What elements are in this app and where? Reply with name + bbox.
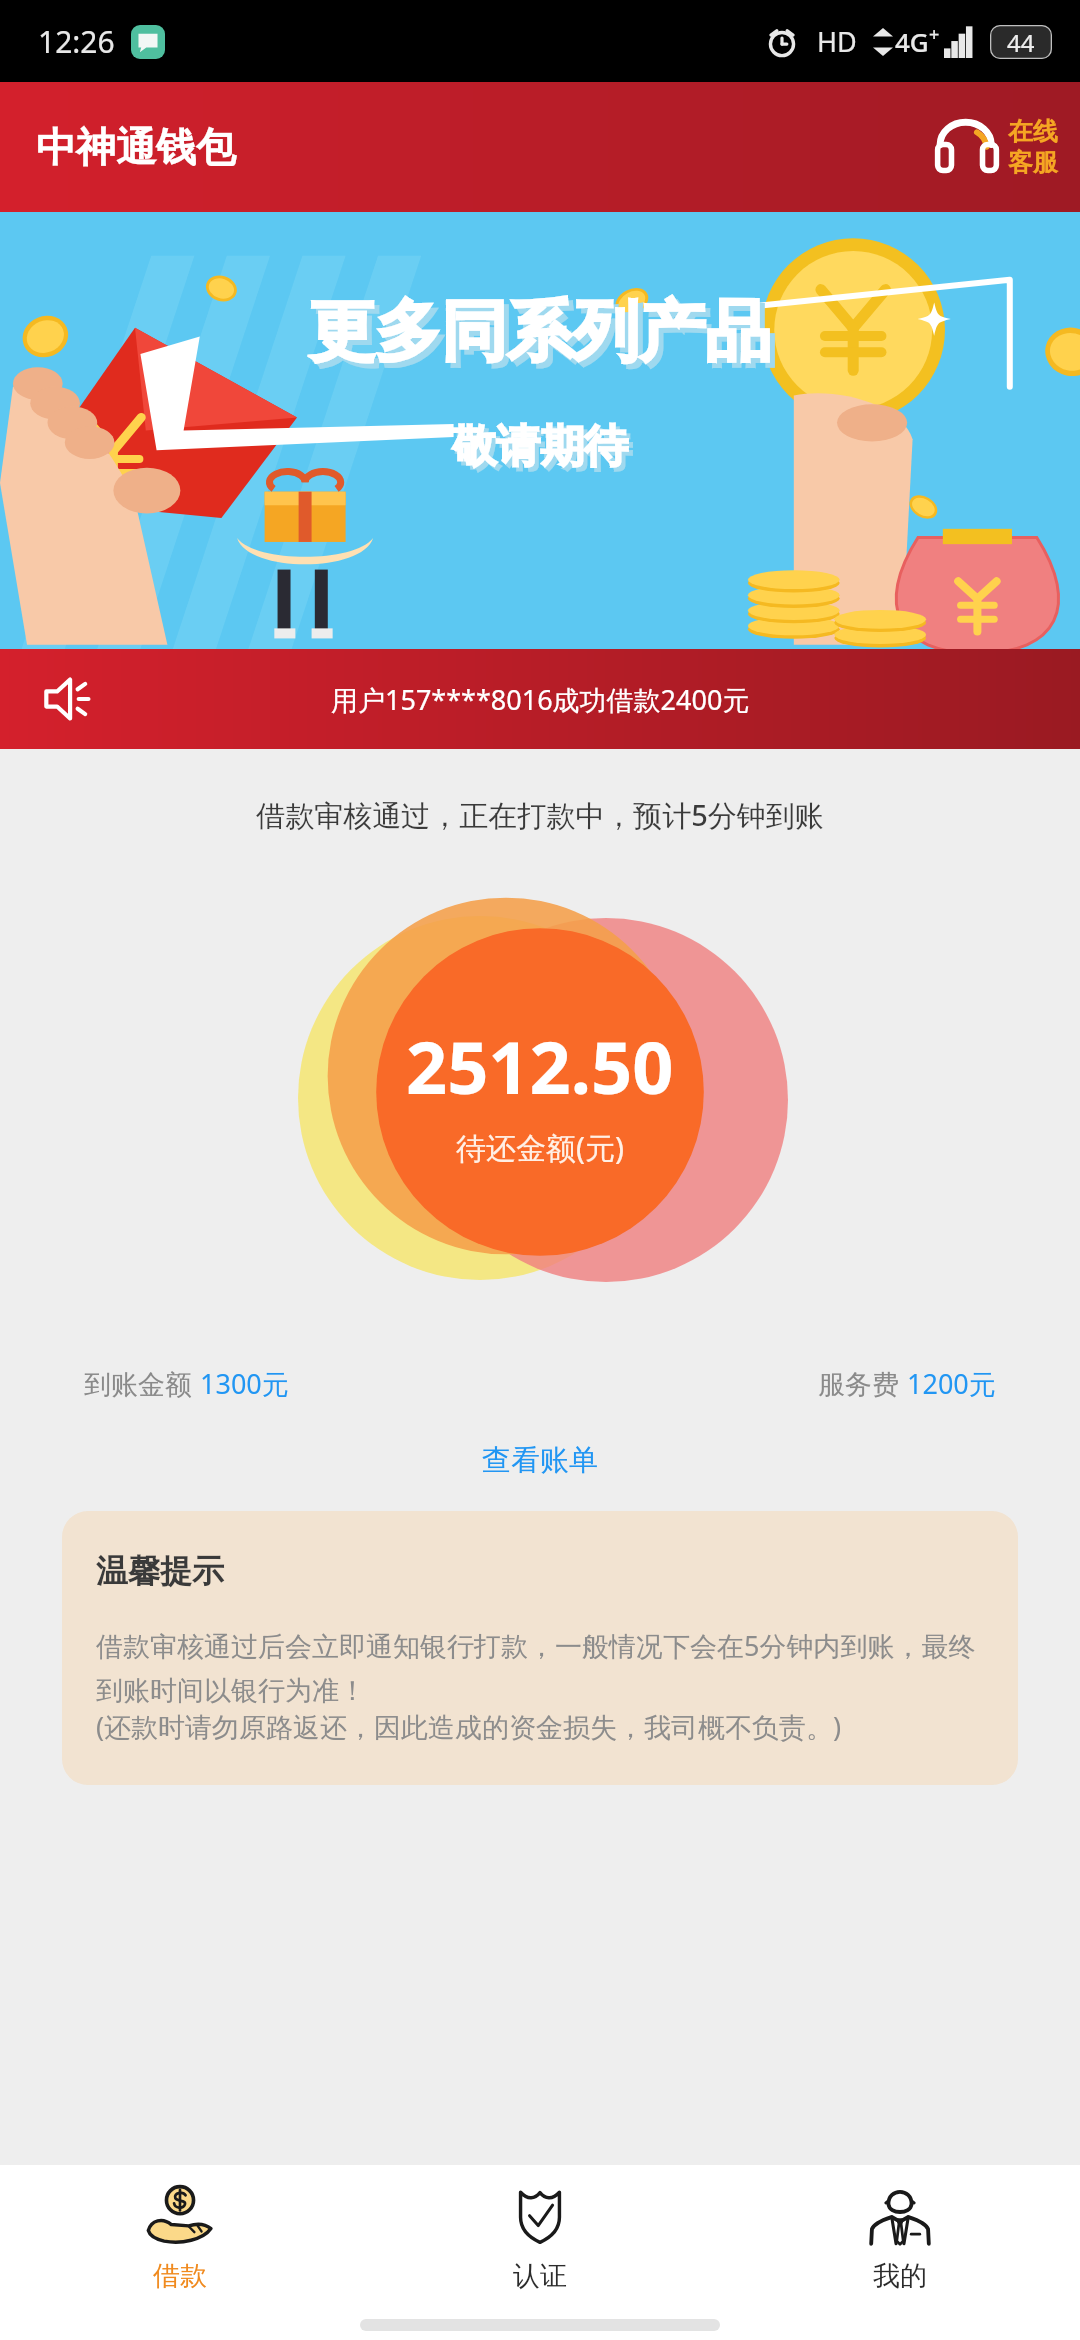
staticText: 在线 [1008, 116, 1058, 147]
staticText: 4G [895, 24, 929, 59]
other: 公告 [42, 672, 96, 726]
button[interactable]: 认证 [360, 2175, 720, 2301]
staticText: 借款审核通过后会立即通知银行打款，一般情况下会在5分钟内到账，最终到账时间以银行… [96, 1627, 984, 1708]
staticText: 敬请期待 [452, 419, 628, 474]
staticText: 借款 [153, 2259, 207, 2293]
staticText: 更多同系列产品 [314, 295, 776, 378]
staticText: 1200元 [907, 1365, 996, 1402]
staticText: 中神通钱包 [36, 122, 236, 172]
button[interactable]: 查看账单 [464, 1436, 616, 1485]
staticText: 更多同系列产品 [309, 290, 771, 373]
staticText: 12:26 [38, 21, 115, 62]
button[interactable]: 借款 [0, 2175, 360, 2301]
staticText: 我的 [873, 2259, 927, 2293]
staticText: 用户157****8016成功借款2400元 [331, 681, 750, 718]
button[interactable]: 公告 [0, 649, 1080, 749]
staticText: HD [817, 23, 857, 60]
button[interactable]: 在线客服 [926, 112, 1066, 182]
staticText: 认证 [513, 2259, 567, 2293]
staticText: 查看账单 [482, 1442, 598, 1479]
button[interactable]: 温馨提示 [62, 1511, 1018, 1785]
button[interactable]: 我的 [720, 2175, 1080, 2301]
staticText: 服务费 [818, 1365, 907, 1402]
staticText: 温馨提示 [96, 1551, 224, 1591]
staticText: 客服 [1008, 147, 1058, 178]
staticText: 敬请期待 [456, 423, 632, 478]
staticText: 2512.50 [406, 1017, 674, 1115]
staticText: (还款时请勿原路返还，因此造成的资金损失，我司概不负责。) [96, 1708, 842, 1745]
staticText: 到账金额 [84, 1365, 200, 1402]
staticText: 1300元 [200, 1365, 289, 1402]
staticText: 44 [1007, 26, 1035, 59]
staticText: 借款审核通过，正在打款中，预计5分钟到账 [0, 795, 1080, 835]
staticText: + [929, 22, 940, 47]
staticText: 待还金额(元) [456, 1127, 624, 1168]
